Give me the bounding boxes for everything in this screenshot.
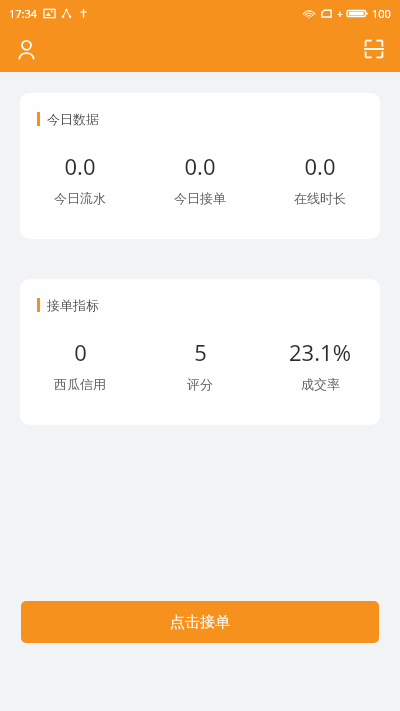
staticText: 0.0	[304, 151, 336, 181]
staticText: 评分	[187, 376, 213, 392]
staticText: 西瓜信用	[54, 376, 106, 392]
staticText: 接单指标	[47, 297, 99, 313]
button[interactable]: Profile	[6, 29, 46, 69]
staticText: 成交率	[301, 376, 340, 392]
staticText: 0	[74, 337, 87, 367]
staticText: +	[337, 7, 343, 21]
staticText: 0.0	[184, 151, 216, 181]
staticText: 5	[194, 337, 207, 367]
staticText: 点击接单	[170, 613, 230, 632]
staticText: 在线时长	[294, 190, 346, 206]
staticText: 23.1%	[289, 337, 351, 367]
staticText: 今日数据	[47, 111, 99, 127]
button[interactable]: 接单指标	[20, 279, 380, 425]
staticText: 17:34	[9, 6, 38, 21]
button[interactable]: Scan	[354, 29, 394, 69]
button[interactable]: 今日数据	[20, 93, 380, 239]
staticText: 今日接单	[174, 190, 226, 206]
staticText: 今日流水	[54, 190, 106, 206]
staticText: 100	[372, 6, 391, 21]
button[interactable]: 点击接单	[21, 601, 379, 643]
staticText: 0.0	[64, 151, 96, 181]
